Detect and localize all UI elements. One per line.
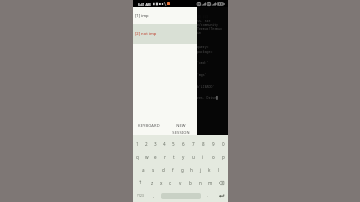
button[interactable]: KEYBOARD <box>133 123 165 135</box>
staticText: m <box>208 180 213 186</box>
button[interactable]: l <box>214 163 223 176</box>
staticText: res. Drive█ <box>197 96 219 100</box>
button[interactable]: y <box>178 150 188 163</box>
staticText: 5 <box>172 141 175 147</box>
button[interactable]: NEW SESSION <box>165 123 197 135</box>
staticText: NEW SESSION <box>172 123 190 135</box>
button[interactable]: v <box>175 176 185 189</box>
staticText: 8 <box>202 141 205 147</box>
button[interactable]: 6 <box>178 137 188 150</box>
staticText: ?123 <box>137 194 144 198</box>
staticText: x <box>160 180 163 186</box>
button[interactable]: w <box>142 150 151 163</box>
staticText: t <box>173 154 175 160</box>
button[interactable]: e <box>151 150 160 163</box>
button[interactable]: Backspace <box>215 176 228 189</box>
staticText: b'LIBADD' <box>197 85 215 89</box>
button[interactable]: q <box>133 150 142 163</box>
staticText: r <box>164 154 166 160</box>
staticText: 6 <box>182 141 185 147</box>
button[interactable]: Shift <box>133 176 148 189</box>
button[interactable]: o <box>208 150 218 163</box>
staticText: ↑ <box>138 180 143 186</box>
staticText: package= <box>197 50 213 54</box>
button[interactable]: x <box>157 176 166 189</box>
button[interactable]: g <box>178 163 187 176</box>
staticText: z <box>151 180 154 186</box>
staticText: f <box>172 167 174 173</box>
staticText: y <box>182 154 185 160</box>
staticText: g <box>181 167 184 173</box>
button[interactable]: 8 <box>198 137 208 150</box>
button[interactable]: p <box>218 150 228 163</box>
staticText: a <box>142 167 145 173</box>
staticText: 7 <box>192 141 195 147</box>
staticText: 4 <box>163 141 166 147</box>
staticText: 6:41 AM <box>138 2 151 6</box>
staticText: 'mgs' <box>197 73 207 77</box>
staticText: j <box>200 167 202 173</box>
button[interactable]: 3 <box>151 137 160 150</box>
button[interactable]: 5 <box>169 137 178 150</box>
button[interactable]: u <box>188 150 198 163</box>
staticText: 0 <box>222 141 225 147</box>
button[interactable]: m <box>205 176 215 189</box>
staticText: u <box>192 154 195 160</box>
staticText: [1] imp <box>135 13 149 19</box>
button[interactable]: b <box>185 176 195 189</box>
staticText: s <box>152 167 155 173</box>
button[interactable]: c <box>166 176 175 189</box>
button[interactable]: f <box>168 163 178 176</box>
staticText: n <box>199 180 202 186</box>
staticText: in <box>197 31 201 35</box>
staticText: 3 <box>154 141 157 147</box>
staticText: [2] not imp <box>135 31 157 37</box>
button[interactable]: i <box>198 150 208 163</box>
staticText: 9 <box>212 141 215 147</box>
staticText: b <box>189 180 192 186</box>
staticText: , <box>153 193 155 198</box>
staticText: q <box>136 154 139 160</box>
staticText: k <box>208 167 211 173</box>
staticText: query= <box>197 45 209 49</box>
button[interactable]: t <box>169 150 178 163</box>
staticText: e/community <box>197 23 219 27</box>
staticText: v <box>179 180 182 186</box>
button[interactable]: [1] imp <box>133 7 197 24</box>
staticText: i <box>202 154 204 160</box>
staticText: 2 <box>145 141 148 147</box>
staticText: Termux/Termux <box>197 27 222 31</box>
button[interactable]: s <box>148 163 158 176</box>
button[interactable]: j <box>196 163 205 176</box>
button[interactable]: n <box>195 176 205 189</box>
staticText: 1 <box>136 141 139 147</box>
button[interactable]: r <box>160 150 169 163</box>
button[interactable]: 4 <box>160 137 169 150</box>
staticText: d <box>162 167 165 173</box>
staticText: c <box>169 180 172 186</box>
button[interactable]: 2 <box>142 137 151 150</box>
button[interactable]: z <box>148 176 157 189</box>
staticText: o <box>212 154 215 160</box>
staticText: p <box>222 154 225 160</box>
button[interactable]: [2] not imp <box>133 24 197 44</box>
staticText: h <box>190 167 193 173</box>
staticText: l <box>218 167 220 173</box>
button[interactable]: ?123 <box>133 189 147 202</box>
button[interactable]: h <box>187 163 196 176</box>
staticText: 'cmd:' <box>197 61 209 65</box>
button[interactable]: 1 <box>133 137 142 150</box>
button[interactable]: 0 <box>218 137 228 150</box>
button[interactable]: k <box>205 163 214 176</box>
button[interactable]: 7 <box>188 137 198 150</box>
button[interactable]: Enter <box>214 189 228 202</box>
button[interactable]: a <box>138 163 148 176</box>
staticText: e <box>154 154 157 160</box>
button[interactable]: d <box>158 163 168 176</box>
staticText: w <box>145 154 149 160</box>
button[interactable]: 9 <box>208 137 218 150</box>
